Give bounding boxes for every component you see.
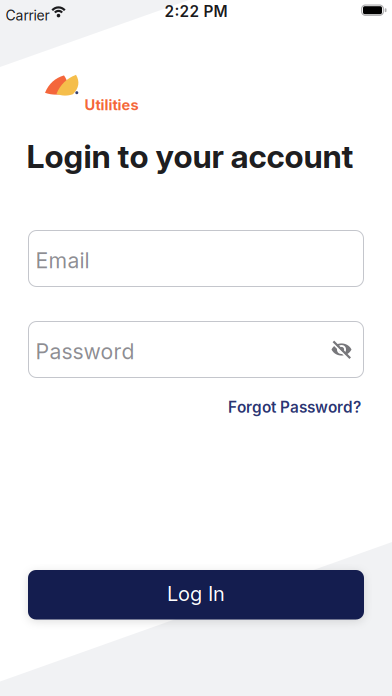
button[interactable]: Email <box>28 230 364 287</box>
staticText: Email <box>35 248 89 273</box>
staticText: Password <box>35 339 134 364</box>
staticText: Log In <box>167 582 225 606</box>
staticText: 2:22 PM <box>164 2 227 21</box>
staticText: Login to your account <box>26 137 353 176</box>
staticText: Utilities <box>84 96 138 114</box>
button[interactable]: Forgot Password? <box>228 398 361 417</box>
staticText: Carrier <box>5 7 49 24</box>
button[interactable]: Password <box>28 321 364 378</box>
button[interactable]: Log In <box>28 570 364 619</box>
staticText: Forgot Password? <box>228 398 361 417</box>
